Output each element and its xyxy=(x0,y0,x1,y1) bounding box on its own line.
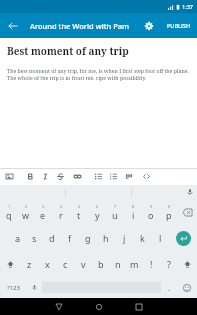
button[interactable]: Comma and voice xyxy=(26,277,42,298)
button[interactable]: j xyxy=(115,225,133,251)
staticText: z xyxy=(27,258,32,270)
staticText: s xyxy=(32,232,37,244)
button[interactable]: 2 xyxy=(17,199,34,225)
staticText: g xyxy=(85,232,91,244)
staticText: l xyxy=(159,232,162,244)
button[interactable]: Home xyxy=(79,298,119,315)
button[interactable]: Shift xyxy=(0,251,20,277)
button[interactable]: ?123 xyxy=(0,277,26,298)
staticText: f xyxy=(68,232,72,244)
button[interactable]: Enter xyxy=(169,225,197,251)
button[interactable]: Back xyxy=(39,298,79,315)
staticText: r xyxy=(59,209,63,221)
button[interactable]: ? xyxy=(160,251,177,277)
staticText: c xyxy=(63,258,68,270)
staticText: o xyxy=(148,209,154,221)
staticText: 1:37 xyxy=(182,3,193,10)
staticText: q xyxy=(6,209,12,221)
staticText: ? xyxy=(167,258,171,270)
button[interactable]: Shift xyxy=(177,251,197,277)
button[interactable]: a xyxy=(9,225,26,251)
staticText: d xyxy=(49,232,55,244)
staticText: n xyxy=(115,258,121,270)
button[interactable] xyxy=(132,185,197,199)
staticText: k xyxy=(140,232,145,244)
staticText: m xyxy=(130,258,139,270)
staticText: Around the World with Pam xyxy=(30,21,136,31)
staticText: y xyxy=(95,209,100,221)
button[interactable]: Numbered list xyxy=(106,168,121,185)
button[interactable]: 3 xyxy=(34,199,52,225)
button[interactable]: x xyxy=(38,251,56,277)
button[interactable]: 7 xyxy=(106,199,124,225)
button[interactable]: f xyxy=(61,225,79,251)
staticText: . xyxy=(168,282,171,293)
button[interactable]: Voice input xyxy=(183,185,197,199)
staticText: 6 xyxy=(96,204,99,209)
staticText: j xyxy=(123,232,126,244)
button[interactable]: Quote xyxy=(121,168,136,185)
button[interactable]: m xyxy=(126,251,143,277)
button[interactable]: 8 xyxy=(124,199,142,225)
button[interactable]: ! xyxy=(143,251,160,277)
staticText: v xyxy=(81,258,86,270)
staticText: i xyxy=(132,209,135,221)
button[interactable]: 1 xyxy=(0,199,17,225)
button[interactable]: k xyxy=(133,225,151,251)
button[interactable]: Backspace xyxy=(178,199,197,225)
button[interactable]: Bold xyxy=(23,168,38,185)
button[interactable]: Emoji xyxy=(177,277,197,298)
button[interactable]: . xyxy=(161,277,177,298)
staticText: 0 xyxy=(168,204,171,209)
button[interactable]: 9 xyxy=(142,199,160,225)
staticText: ?123 xyxy=(7,284,20,292)
button[interactable]: l xyxy=(151,225,169,251)
staticText: 8 xyxy=(132,204,135,209)
button[interactable]: 0 xyxy=(160,199,178,225)
staticText: Best moment of any trip xyxy=(7,44,129,58)
button[interactable]: s xyxy=(26,225,43,251)
button[interactable]: Italic xyxy=(38,168,53,185)
button[interactable]: Bulleted list xyxy=(91,168,106,185)
button[interactable]: b xyxy=(92,251,109,277)
button[interactable]: Code xyxy=(139,168,154,185)
staticText: The best moment of any trip, for me, is … xyxy=(7,67,190,82)
staticText: e xyxy=(40,209,46,221)
staticText: a xyxy=(15,232,21,244)
staticText: h xyxy=(103,232,109,244)
button[interactable]: Back xyxy=(0,13,25,38)
button[interactable]: d xyxy=(43,225,61,251)
staticText: ! xyxy=(150,258,153,270)
button[interactable]: Recent apps xyxy=(119,298,159,315)
staticText: 3 xyxy=(42,204,45,209)
staticText: 2 xyxy=(25,204,28,209)
staticText: w xyxy=(22,209,30,221)
button[interactable]: n xyxy=(109,251,126,277)
button[interactable]: PUBLISH xyxy=(161,13,197,38)
staticText: p xyxy=(166,209,172,221)
button[interactable]: Settings xyxy=(136,13,161,38)
staticText: 9 xyxy=(150,204,153,209)
button[interactable]: Insert media xyxy=(2,168,17,185)
button[interactable]: Link xyxy=(70,168,85,185)
staticText: 1 xyxy=(8,204,11,209)
button[interactable]: g xyxy=(79,225,97,251)
button[interactable]: v xyxy=(74,251,92,277)
staticText: 7 xyxy=(114,204,117,209)
button[interactable]: 6 xyxy=(88,199,106,225)
button[interactable]: c xyxy=(56,251,74,277)
button[interactable]: h xyxy=(97,225,115,251)
staticText: u xyxy=(112,209,118,221)
button[interactable]: 5 xyxy=(70,199,88,225)
staticText: t xyxy=(77,209,81,221)
staticText: PUBLISH xyxy=(167,22,191,29)
staticText: b xyxy=(98,258,104,270)
button[interactable]: 4 xyxy=(52,199,70,225)
staticText: 5 xyxy=(78,204,81,209)
button[interactable]: Strikethrough xyxy=(53,168,68,185)
staticText: x xyxy=(45,258,50,270)
button[interactable]: z xyxy=(20,251,38,277)
